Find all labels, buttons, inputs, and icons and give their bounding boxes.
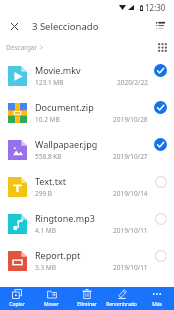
button[interactable]: Not selected xyxy=(154,175,167,188)
button[interactable]: Más xyxy=(139,287,174,310)
staticText: Eliminar xyxy=(77,301,97,308)
staticText: Descargar xyxy=(6,43,38,52)
button[interactable]: Not selected xyxy=(154,212,167,225)
button[interactable]: Selected xyxy=(154,64,167,77)
button[interactable]: Eliminar xyxy=(69,287,104,310)
staticText: Report.ppt xyxy=(35,249,81,261)
button[interactable]: Renombrado xyxy=(104,287,139,310)
staticText: 2019/10/11 xyxy=(113,263,148,272)
button[interactable]: Not selected xyxy=(154,249,167,262)
button[interactable]: Selected xyxy=(154,101,167,114)
button[interactable]: Mover xyxy=(34,287,69,310)
staticText: 2020/2/22 xyxy=(117,78,148,87)
staticText: Renombrado xyxy=(106,301,137,308)
button[interactable]: Close selection xyxy=(2,14,26,38)
staticText: Mover xyxy=(44,301,59,308)
button[interactable]: Report.ppt xyxy=(0,242,174,279)
staticText: 2019/10/11 xyxy=(113,226,148,235)
button[interactable]: Selected xyxy=(154,138,167,151)
staticText: Text.txt xyxy=(35,175,66,187)
button[interactable]: Movie.mkv xyxy=(0,57,174,94)
button[interactable]: Text.txt xyxy=(0,168,174,205)
staticText: 2019/10/28 xyxy=(113,115,148,124)
staticText: Copiar xyxy=(9,301,25,308)
staticText: 12:30 xyxy=(145,2,166,13)
button[interactable]: Document.zip xyxy=(0,94,174,131)
staticText: Wallpapaer.jpg xyxy=(35,138,98,150)
staticText: Ringtone.mp3 xyxy=(35,212,95,224)
staticText: 123.1 MB xyxy=(35,78,64,87)
staticText: Más xyxy=(152,301,162,308)
button[interactable]: Wallpapaer.jpg xyxy=(0,131,174,168)
staticText: 2019/10/14 xyxy=(113,189,148,198)
staticText: 2019/10/27 xyxy=(113,152,148,161)
button[interactable]: Descargar xyxy=(6,43,43,52)
staticText: Document.zip xyxy=(35,101,94,113)
staticText: 3 Seleccionado xyxy=(32,20,99,33)
button[interactable]: Copiar xyxy=(0,287,34,310)
staticText: 558.8 KB xyxy=(35,152,62,161)
button[interactable]: Sort xyxy=(148,14,172,37)
staticText: 4.1 MB xyxy=(35,226,56,235)
staticText: 10.2 MB xyxy=(35,115,60,124)
button[interactable]: Ringtone.mp3 xyxy=(0,205,174,242)
staticText: 3.3 MB xyxy=(35,263,56,272)
staticText: Movie.mkv xyxy=(35,64,81,76)
button[interactable]: Grid view xyxy=(152,38,172,57)
staticText: 299 B xyxy=(35,189,53,198)
